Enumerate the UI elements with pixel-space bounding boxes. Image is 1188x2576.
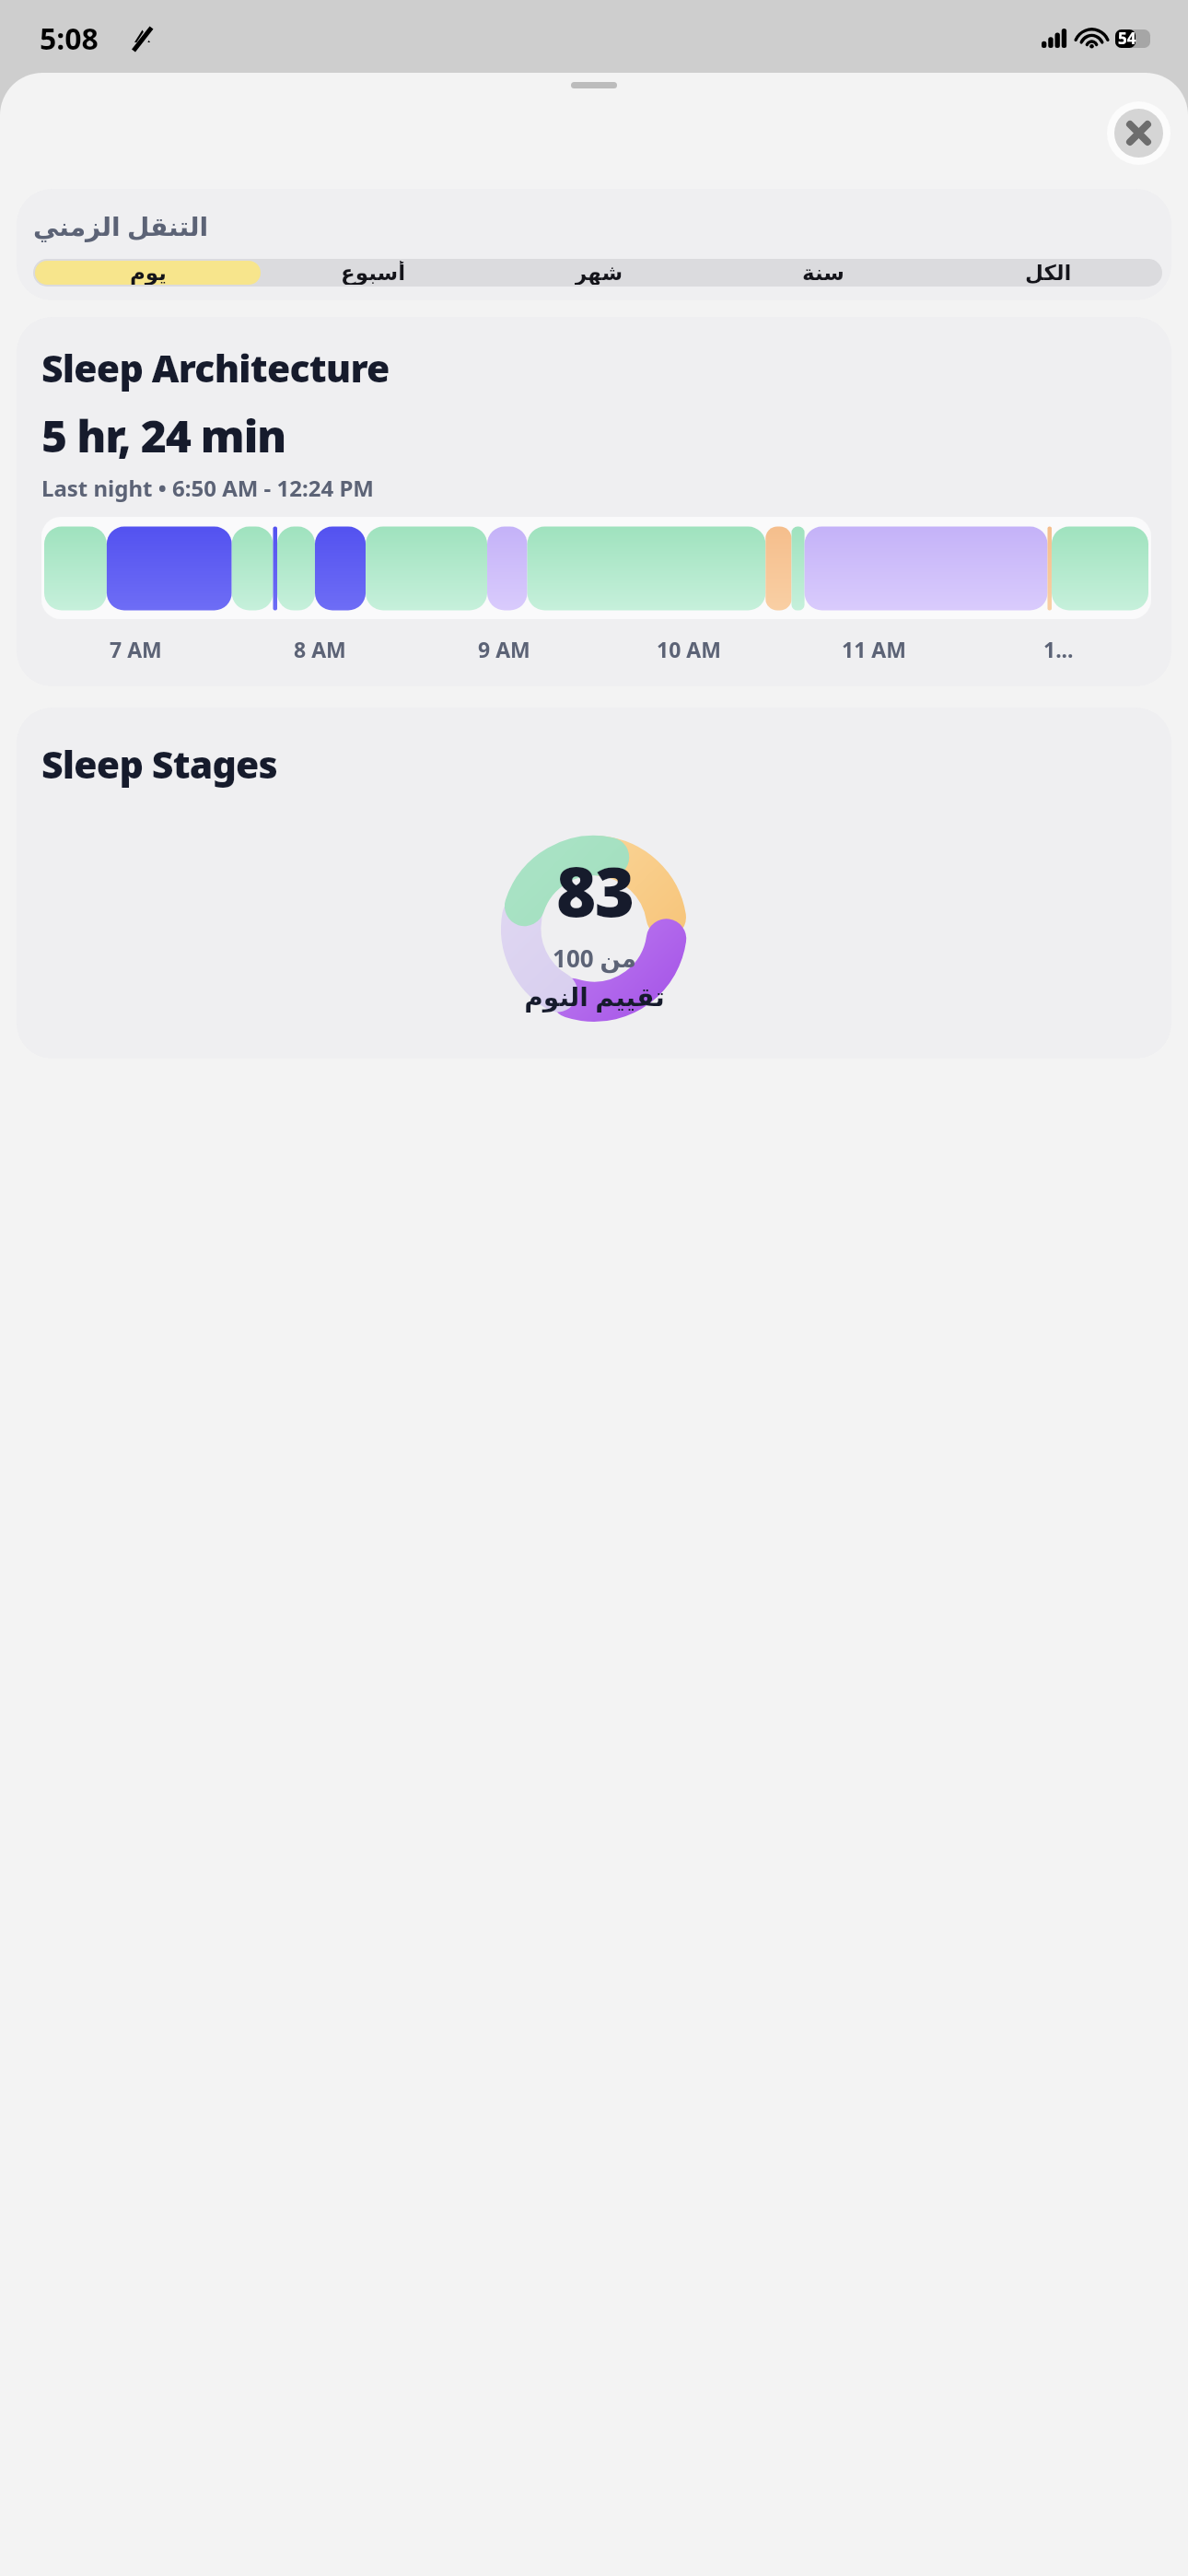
staticText: الكل: [1025, 261, 1072, 285]
staticText: 83: [556, 844, 634, 937]
staticText: 5:08: [40, 18, 99, 59]
staticText: 7 AM: [110, 635, 162, 663]
staticText: التنقل الزمني: [33, 208, 209, 243]
button[interactable]: سنة: [711, 261, 936, 285]
staticText: 5 hr, 24 min: [41, 405, 286, 465]
staticText: 10 AM: [657, 635, 721, 663]
staticText: Sleep Architecture: [41, 342, 390, 393]
staticText: شهر: [575, 261, 623, 285]
button[interactable]: شهر: [486, 261, 711, 285]
staticText: أسبوع: [341, 261, 406, 285]
staticText: من 100: [553, 942, 636, 974]
button[interactable]: Close: [1107, 101, 1171, 165]
staticText: Sleep Stages: [41, 738, 277, 790]
staticText: تقييم النوم: [524, 978, 665, 1013]
staticText: يوم: [130, 261, 167, 285]
staticText: 9 AM: [478, 635, 530, 663]
button[interactable]: أسبوع: [261, 261, 486, 285]
staticText: Last night • 6:50 AM - 12:24 PM: [41, 473, 374, 503]
staticText: سنة: [802, 261, 844, 285]
button[interactable]: الكل: [936, 261, 1160, 285]
staticText: 11 AM: [842, 635, 906, 663]
staticText: 8 AM: [294, 635, 346, 663]
staticText: 1...: [1043, 635, 1074, 663]
staticText: 54: [1118, 28, 1136, 49]
button[interactable]: يوم: [35, 261, 261, 285]
